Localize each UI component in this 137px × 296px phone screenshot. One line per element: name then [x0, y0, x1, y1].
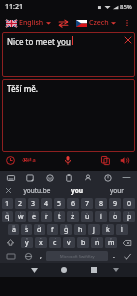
staticText: %: [6, 211, 9, 216]
button[interactable]: 3: [28, 198, 39, 209]
button[interactable]: <: [81, 211, 93, 222]
button[interactable]: Recent apps: [87, 263, 101, 277]
staticText: r: [45, 212, 48, 222]
button[interactable]: Language switch: [20, 249, 36, 263]
button[interactable]: 8: [95, 198, 107, 209]
button[interactable]: Clear text: [123, 35, 132, 44]
button[interactable]: ': [49, 237, 61, 248]
button[interactable]: .: [109, 249, 118, 263]
staticText: ;: [83, 237, 84, 242]
staticText: ": [40, 237, 42, 242]
button[interactable]: 9: [109, 198, 121, 209]
button[interactable]: 7: [81, 198, 93, 209]
button[interactable]: Space: [46, 251, 108, 261]
button[interactable]: 6: [67, 198, 79, 209]
staticText: d: [37, 225, 42, 235]
button[interactable]: Voice input: [61, 153, 75, 167]
button[interactable]: Expand suggestions: [0, 184, 16, 196]
staticText: i: [100, 212, 102, 222]
button[interactable]: &: [60, 224, 72, 235]
button[interactable]: Keyboard tool 6: [102, 172, 113, 183]
staticText: n: [95, 238, 100, 248]
button[interactable]: ]: [67, 211, 79, 222]
staticText: 8: [99, 199, 104, 209]
staticText: 0: [127, 199, 132, 209]
button[interactable]: Nice to meet: [2, 32, 135, 77]
button[interactable]: Backspace: [119, 237, 135, 248]
button[interactable]: ?: [105, 237, 117, 248]
button[interactable]: Czech: [74, 16, 118, 30]
button[interactable]: Shift: [2, 237, 19, 248]
staticText: 4: [44, 199, 49, 209]
button[interactable]: Hide keyboard: [109, 263, 123, 277]
staticText: 85%: [120, 3, 132, 11]
button[interactable]: ": [35, 237, 47, 248]
button[interactable]: (: [102, 224, 114, 235]
button[interactable]: Keyboard tool 5: [82, 172, 93, 183]
staticText: <: [86, 211, 89, 216]
button[interactable]: -: [74, 224, 86, 235]
staticText: {: [114, 211, 116, 216]
button[interactable]: 2: [15, 198, 26, 209]
button[interactable]: >: [95, 211, 107, 222]
button[interactable]: you: [57, 184, 97, 196]
button[interactable]: ;: [77, 237, 89, 248]
staticText: &: [65, 224, 68, 229]
button[interactable]: |: [28, 211, 39, 222]
staticText: g: [64, 225, 69, 235]
button[interactable]: [: [54, 211, 65, 222]
staticText: q: [5, 212, 10, 222]
staticText: |: [33, 211, 35, 216]
button[interactable]: Těší mě.: [2, 79, 135, 152]
button[interactable]: +: [88, 224, 100, 235]
button[interactable]: 5: [54, 198, 65, 209]
staticText: Czech: [89, 18, 109, 28]
button[interactable]: Speak: [118, 154, 131, 167]
button[interactable]: 4: [41, 198, 52, 209]
staticText: 6: [71, 199, 76, 209]
button[interactable]: More options: [121, 17, 133, 29]
button[interactable]: :: [63, 237, 75, 248]
button[interactable]: }: [123, 211, 135, 222]
button[interactable]: English: [4, 16, 53, 30]
staticText: \: [20, 211, 22, 216]
button[interactable]: \: [15, 211, 26, 222]
button[interactable]: 1: [2, 198, 13, 209]
button[interactable]: Symbols: [1, 249, 20, 263]
button[interactable]: Copy: [99, 154, 112, 167]
staticText: a: [12, 225, 16, 235]
button[interactable]: Swap languages: [55, 15, 71, 31]
button[interactable]: %: [2, 211, 13, 222]
button[interactable]: !: [91, 237, 103, 248]
button[interactable]: @: [8, 224, 19, 235]
button[interactable]: Enter: [118, 249, 136, 263]
button[interactable]: =: [41, 211, 52, 222]
button[interactable]: your: [97, 184, 137, 196]
button[interactable]: _: [47, 224, 58, 235]
button[interactable]: $: [34, 224, 45, 235]
button[interactable]: History: [4, 154, 17, 167]
button[interactable]: *: [21, 237, 33, 248]
staticText: +: [93, 224, 96, 229]
staticText: t: [58, 212, 61, 222]
button[interactable]: Keyboard tool 3: [44, 172, 55, 183]
staticText: j: [93, 225, 95, 235]
staticText: (: [107, 224, 109, 229]
button[interactable]: 0: [123, 198, 135, 209]
staticText: 9: [113, 199, 118, 209]
button[interactable]: ,: [36, 249, 45, 263]
button[interactable]: Keyboard tool 4: [63, 172, 74, 183]
button[interactable]: ): [116, 224, 128, 235]
button[interactable]: Home: [57, 263, 71, 277]
button[interactable]: #: [21, 224, 32, 235]
button[interactable]: Collapse toolbar: [121, 172, 132, 183]
button[interactable]: Transliteration: [21, 155, 37, 165]
staticText: m: [108, 238, 115, 248]
staticText: o: [113, 212, 118, 222]
button[interactable]: Back: [27, 263, 41, 277]
button[interactable]: Keyboard tool 2: [24, 172, 35, 183]
button[interactable]: youtu.be: [16, 184, 57, 196]
button[interactable]: {: [109, 211, 121, 222]
staticText: Nice to meet: [7, 36, 57, 47]
button[interactable]: Keyboard tool 1: [5, 172, 16, 183]
